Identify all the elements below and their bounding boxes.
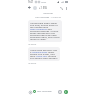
staticText: 12:46 PM — [28, 43, 37, 46]
staticText: MMS — [41, 1, 47, 4]
button[interactable]: Using data abroad? Add a roaming pass to… — [28, 47, 60, 61]
button[interactable]: Back — [27, 5, 32, 10]
staticText: +1 555 — [39, 6, 48, 10]
button[interactable]: Add attachment — [28, 90, 32, 94]
button[interactable]: Unmissable offers await you now, unlock … — [28, 20, 62, 42]
button[interactable]: More options — [64, 6, 68, 10]
staticText: 12:52 PM — [28, 62, 37, 65]
button[interactable]: Call — [59, 6, 63, 10]
button[interactable]: Send — [64, 90, 68, 94]
staticText: Using data abroad? Add a roaming pass to… — [30, 48, 58, 60]
button[interactable]: Emoji — [58, 90, 62, 94]
staticText: Text message — [37, 90, 52, 93]
staticText: Text message - 12:45 PM — [28, 16, 68, 19]
staticText: Unmissable offers await you now, unlock … — [30, 21, 60, 41]
staticText: Yesterday — [28, 12, 68, 15]
staticText: 9:41 — [28, 0, 34, 4]
